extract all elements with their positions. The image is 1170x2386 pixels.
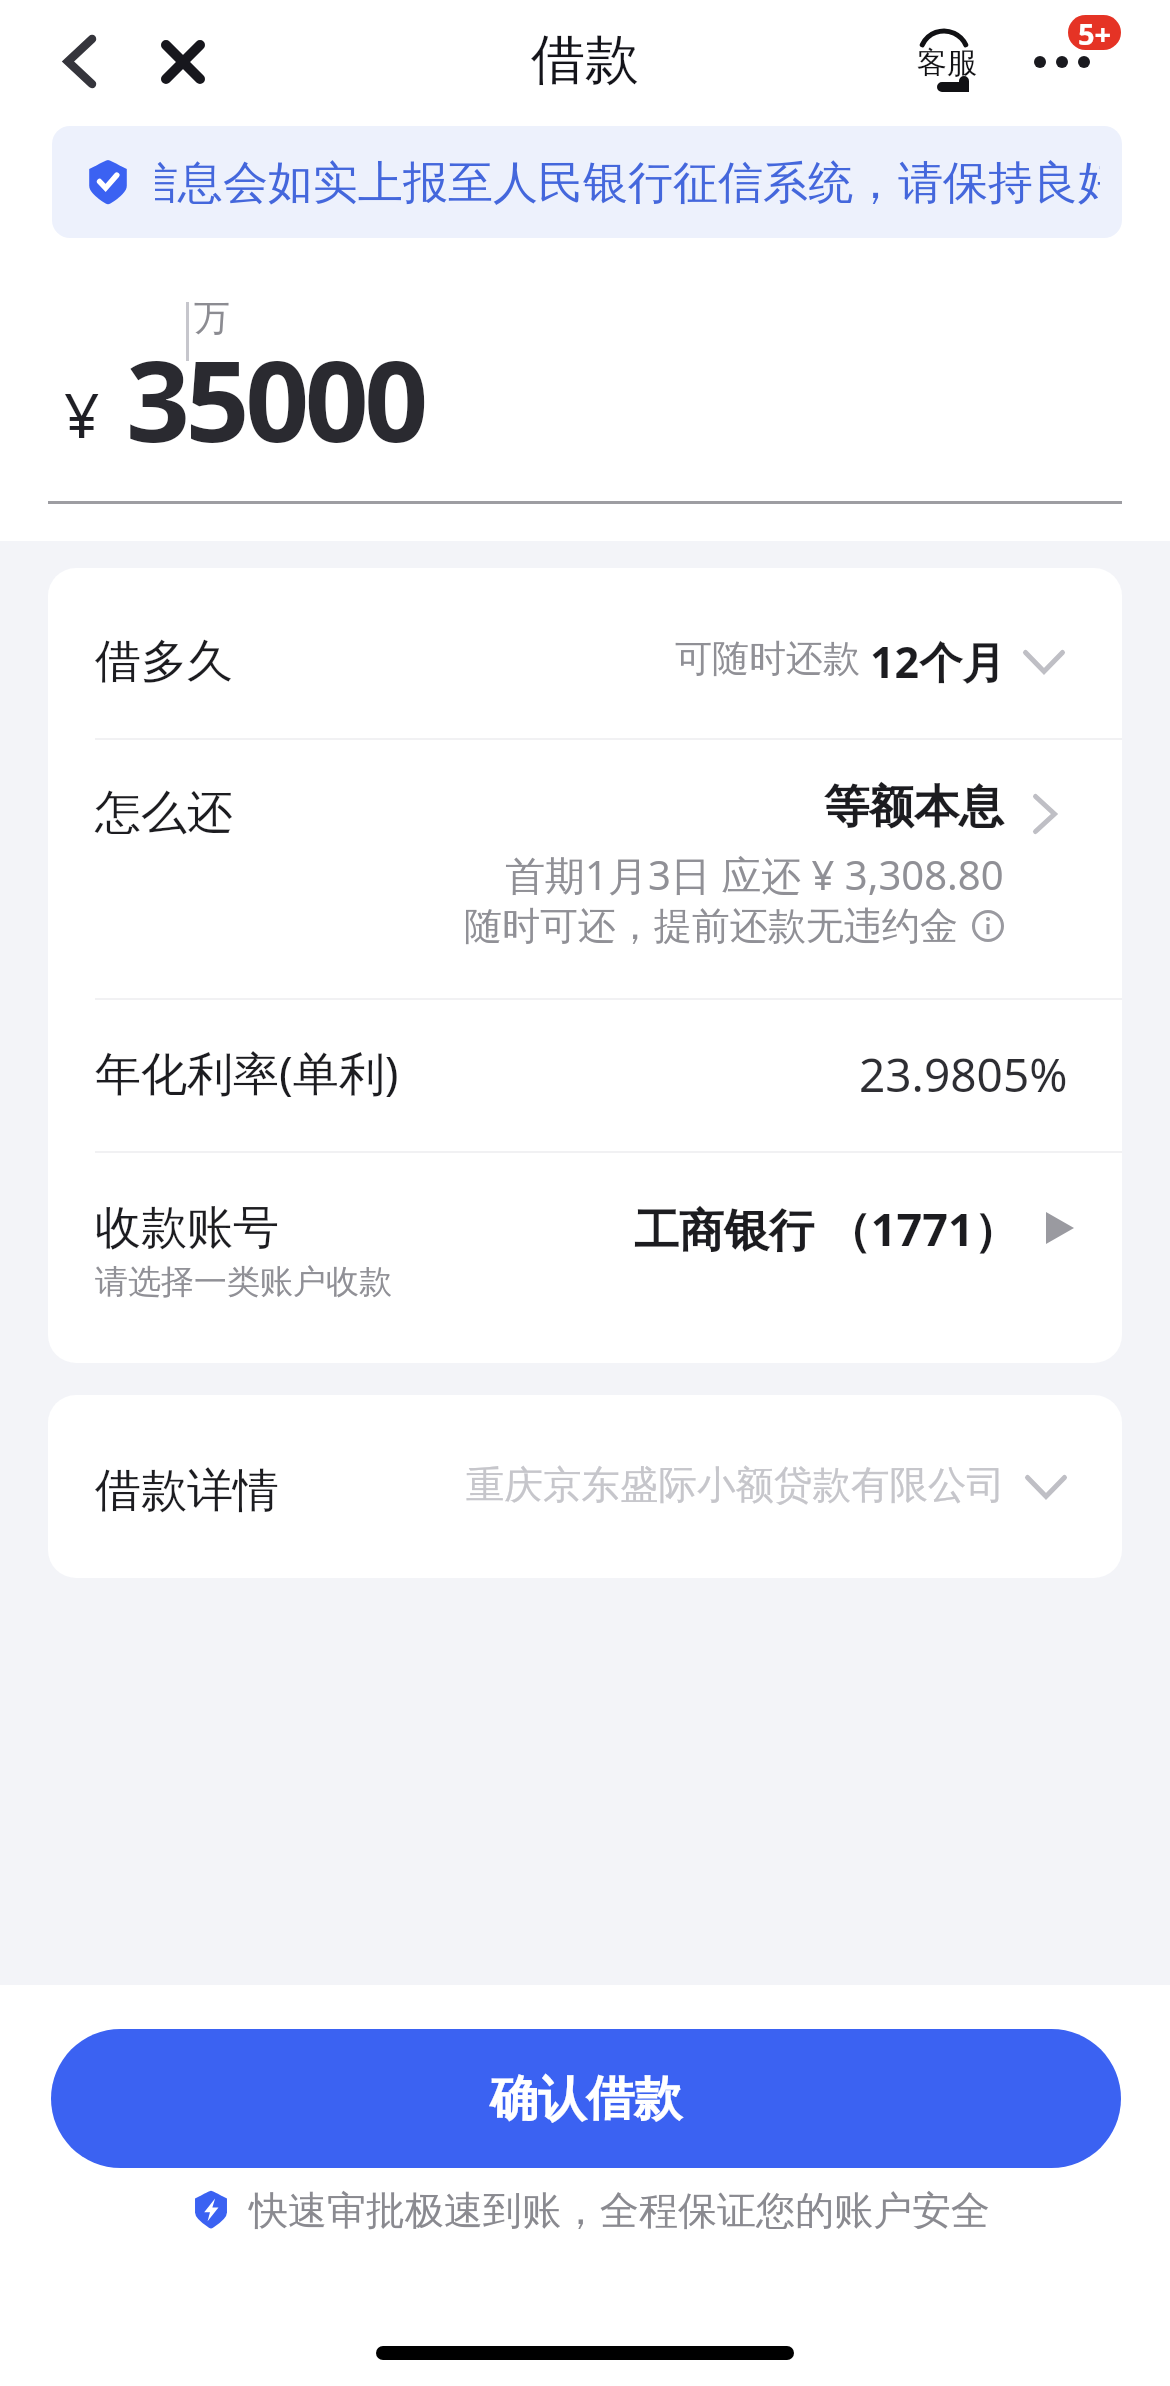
- staticText: ¥: [64, 372, 100, 456]
- staticText: 首期1月3日 应还 ¥ 3,308.80: [505, 847, 1004, 902]
- staticText: 借款: [531, 26, 639, 94]
- button[interactable]: Close: [141, 20, 225, 104]
- button[interactable]: 收款账号: [48, 1151, 1122, 1363]
- button[interactable]: Back: [34, 18, 118, 102]
- button[interactable]: 借款详情: [48, 1395, 1122, 1578]
- button[interactable]: Customer service: [905, 16, 989, 108]
- staticText: 收款账号: [95, 1199, 279, 1257]
- staticText: 12个月: [870, 632, 1006, 691]
- staticText: 借款详情: [95, 1462, 279, 1520]
- staticText: 35000: [126, 322, 424, 475]
- staticText: 5+: [1078, 15, 1112, 49]
- button[interactable]: 信息会如实上报至人民银行征信系统，请保持良好，避免: [52, 126, 1122, 238]
- staticText: 等额本息: [824, 779, 1004, 836]
- staticText: 信息会如实上报至人民银行征信系统，请保持良好，避免: [155, 155, 1100, 212]
- staticText: 怎么还: [95, 784, 233, 842]
- button[interactable]: 确认借款: [51, 2029, 1121, 2168]
- button[interactable]: 借多久: [48, 568, 1122, 738]
- button[interactable]: 怎么还: [48, 738, 1122, 998]
- staticText: 万: [194, 295, 230, 340]
- staticText: 客服: [917, 44, 977, 82]
- button[interactable]: 年化利率(单利): [48, 998, 1122, 1151]
- staticText: 随时可还，提前还款无违约金: [464, 902, 958, 950]
- staticText: 借多久: [95, 633, 233, 691]
- staticText: 重庆京东盛际小额贷款有限公司: [466, 1461, 1005, 1510]
- staticText: 快速审批极速到账，全程保证您的账户安全: [249, 2186, 990, 2235]
- staticText: 年化利率(单利): [95, 1041, 399, 1104]
- staticText: 23.9805%: [859, 1043, 1068, 1106]
- button[interactable]: More options: [1016, 22, 1108, 102]
- staticText: 请选择一类账户收款: [95, 1261, 392, 1303]
- staticText: 确认借款: [490, 2069, 682, 2129]
- staticText: 可随时还款: [675, 635, 860, 682]
- staticText: 工商银行 （1771）: [634, 1198, 1019, 1259]
